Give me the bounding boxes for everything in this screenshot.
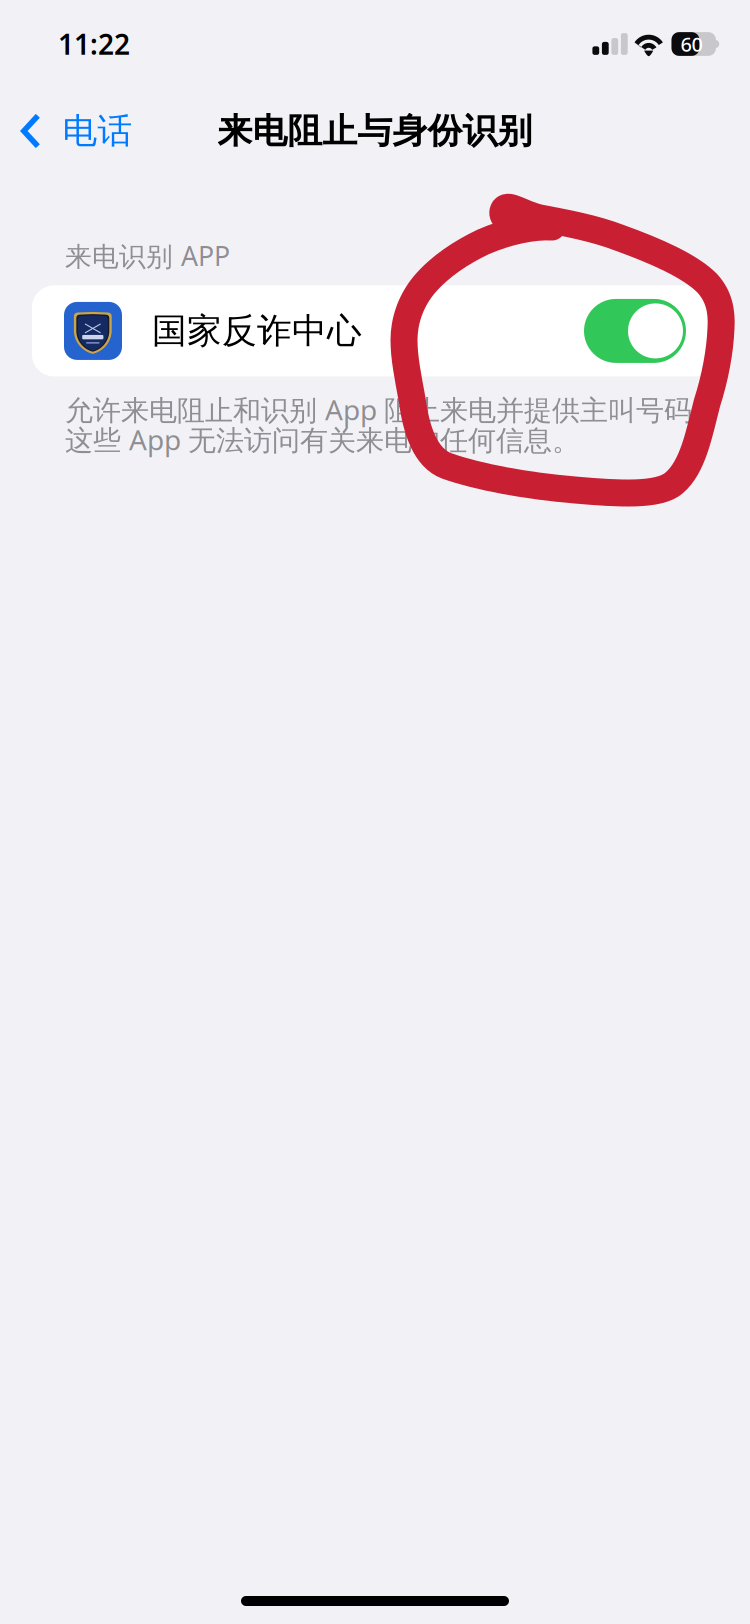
staticText: 国家反诈中心 [152, 310, 362, 352]
button[interactable]: 电话 [0, 88, 170, 174]
staticText: 来电识别 APP [65, 238, 230, 273]
staticText: 来电阻止与身份识别 [217, 110, 532, 152]
staticText: 60 [680, 31, 702, 57]
staticText: 电话 [63, 110, 133, 152]
button[interactable]: 国家反诈中心 [32, 285, 718, 376]
staticText: 允许来电阻止和识别 App 阻止来电并提供主叫号码。 [65, 391, 720, 428]
staticText: 11:22 [58, 25, 130, 63]
staticText: 这些 App 无法访问有关来电的任何信息。 [65, 421, 580, 458]
